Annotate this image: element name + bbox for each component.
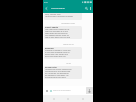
staticText: Design notes bbox=[45, 66, 57, 68]
button[interactable]: Back bbox=[50, 95, 58, 102]
button[interactable]: Emoji bbox=[45, 89, 49, 93]
staticText: Reminder bbox=[45, 47, 54, 49]
button[interactable]: Back bbox=[43, 4, 50, 13]
staticText: Sure, see you then Let me know if anythi… bbox=[45, 13, 73, 17]
button[interactable]: Recents bbox=[79, 95, 87, 102]
staticText: Yesterday 18:20 bbox=[61, 22, 75, 25]
button[interactable]: Project update bbox=[44, 26, 82, 39]
staticText: Standup is moved to 10:00 am in the main… bbox=[45, 49, 71, 57]
button[interactable]: Attach bbox=[49, 89, 53, 93]
button[interactable]: More options bbox=[88, 4, 93, 13]
staticText: The new build is ready for re- view and … bbox=[45, 28, 71, 39]
staticText: 10:40 bbox=[66, 62, 71, 65]
staticText: 9:41 bbox=[44, 1, 49, 4]
staticText: Project update bbox=[45, 26, 59, 28]
button[interactable]: Send bbox=[86, 87, 93, 94]
button[interactable]: Sure, see you then Let me know if anythi… bbox=[44, 13, 82, 20]
button[interactable]: Reminder bbox=[44, 47, 82, 59]
button[interactable]: Search bbox=[84, 4, 88, 13]
button[interactable]: Home bbox=[64, 95, 72, 102]
staticText: Updated the colour palette and the spaci… bbox=[45, 68, 72, 78]
staticText: Conversation bbox=[51, 7, 65, 10]
staticText: Today 09:12 bbox=[63, 43, 74, 46]
button[interactable]: Design notes bbox=[44, 66, 82, 79]
staticText: Send a message bbox=[53, 89, 71, 92]
